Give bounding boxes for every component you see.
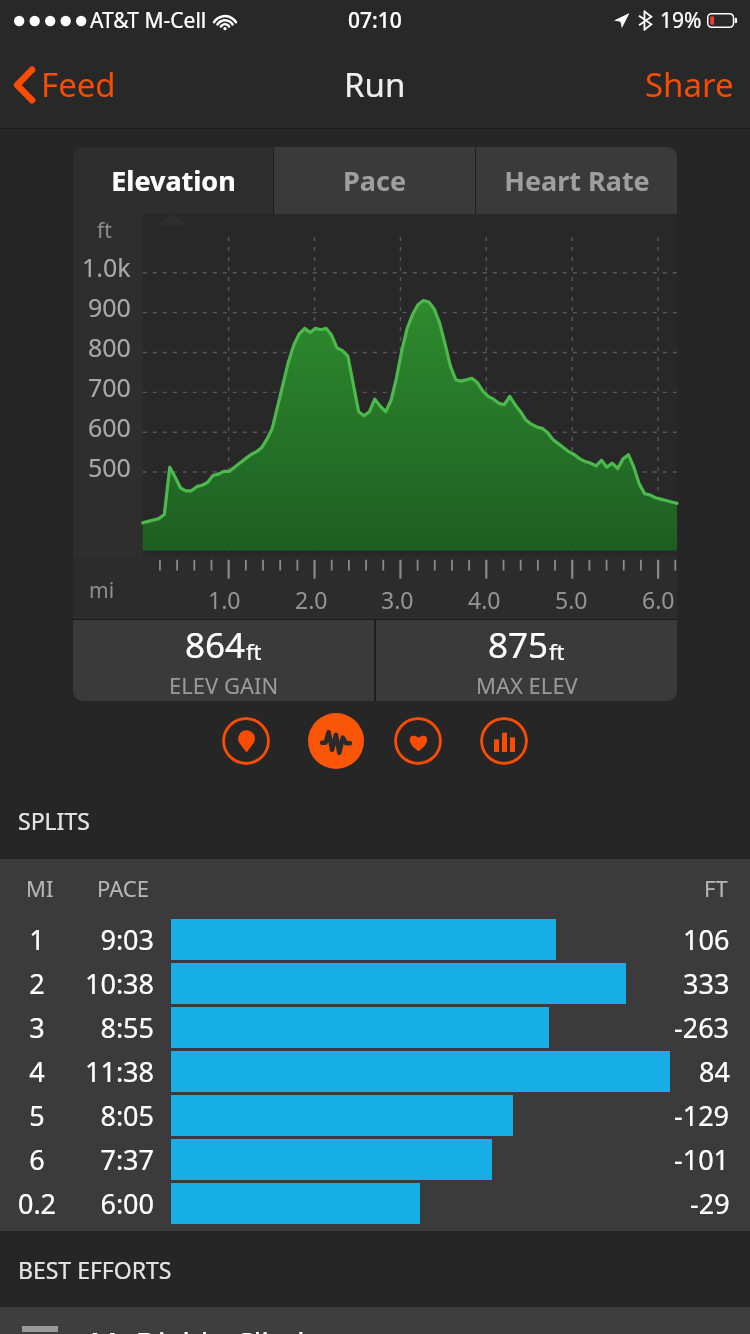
staticText: 6:00	[66, 1185, 154, 1222]
staticText: 0.2	[6, 1185, 68, 1222]
staticText: Mt Diablo Climb	[90, 1323, 316, 1334]
button[interactable]: 5	[0, 1093, 750, 1137]
staticText: 6.0	[642, 584, 675, 615]
staticText: 600	[88, 410, 131, 444]
staticText: MAX ELEV	[476, 670, 578, 700]
staticText: 7:37	[66, 1141, 154, 1178]
staticText: FT	[704, 873, 728, 903]
button[interactable]: 4	[0, 1049, 750, 1093]
staticText: -101	[674, 1141, 730, 1178]
staticText: Elevation	[111, 162, 236, 199]
button[interactable]: Elevation	[73, 147, 273, 214]
staticText: 8:55	[66, 1009, 154, 1046]
staticText: -129	[674, 1097, 730, 1134]
staticText: 2.0	[295, 584, 328, 615]
staticText: Run	[344, 62, 406, 107]
staticText: 9:03	[66, 921, 154, 958]
button[interactable]: 6	[0, 1137, 750, 1181]
button[interactable]: 1	[0, 917, 750, 961]
staticText: 800	[88, 330, 131, 364]
staticText: 1.0k	[82, 250, 131, 284]
staticText: SPLITS	[18, 805, 90, 836]
staticText: ft	[549, 636, 565, 666]
staticText: MI	[26, 873, 54, 903]
staticText: 106	[683, 921, 730, 958]
staticText: 864	[185, 621, 246, 669]
button[interactable]: Map	[222, 717, 270, 765]
staticText: Feed	[41, 62, 116, 107]
button[interactable]: 875	[376, 620, 677, 701]
button[interactable]: Share	[629, 52, 750, 117]
staticText: 07:10	[348, 6, 402, 35]
staticText: 2	[6, 965, 68, 1002]
staticText: 19%	[660, 6, 702, 35]
button[interactable]: Splits	[480, 717, 528, 765]
staticText: Pace	[343, 162, 406, 199]
staticText: Heart Rate	[504, 162, 650, 199]
button[interactable]: 2	[0, 961, 750, 1005]
staticText: ft	[246, 636, 262, 666]
button[interactable]: 864	[73, 620, 374, 701]
staticText: 875	[488, 621, 549, 669]
staticText: 84	[699, 1053, 730, 1090]
staticText: 500	[88, 450, 131, 484]
staticText: 4	[6, 1053, 68, 1090]
button[interactable]: Feed	[0, 54, 132, 115]
staticText: 333	[683, 965, 730, 1002]
staticText: 4.0	[468, 584, 501, 615]
staticText: 8:05	[66, 1097, 154, 1134]
staticText: 10:38	[66, 965, 154, 1002]
staticText: 1	[6, 921, 68, 958]
staticText: ELEV GAIN	[169, 670, 279, 700]
staticText: 5.0	[555, 584, 588, 615]
button[interactable]: Elevation chart	[308, 713, 364, 769]
staticText: 3.0	[381, 584, 414, 615]
staticText: 6	[6, 1141, 68, 1178]
staticText: Share	[645, 62, 734, 107]
staticText: 700	[88, 370, 131, 404]
button[interactable]: 3	[0, 1005, 750, 1049]
staticText: ft	[97, 216, 112, 245]
button[interactable]: Heart Rate	[476, 147, 677, 214]
button[interactable]: Heart rate	[394, 717, 442, 765]
staticText: -263	[674, 1009, 730, 1046]
button[interactable]: Pace	[274, 147, 475, 214]
button[interactable]: 0.2	[0, 1181, 750, 1225]
staticText: 1.0	[208, 584, 241, 615]
staticText: AT&T M-Cell	[90, 6, 207, 35]
staticText: 11:38	[66, 1053, 154, 1090]
staticText: 3	[6, 1009, 68, 1046]
staticText: -29	[690, 1185, 730, 1222]
staticText: PACE	[97, 873, 149, 903]
staticText: BEST EFFORTS	[18, 1254, 172, 1285]
staticText: mi	[89, 576, 115, 605]
staticText: 5	[6, 1097, 68, 1134]
staticText: 900	[88, 290, 131, 324]
